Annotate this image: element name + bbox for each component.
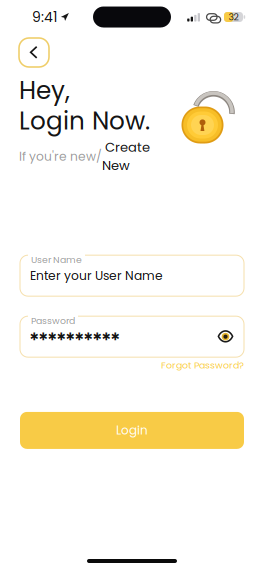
button[interactable]: Forgot Password? [161, 359, 244, 372]
button[interactable]: Show password [217, 330, 234, 344]
staticText: 9:41 [32, 7, 57, 27]
staticText: Forgot Password? [161, 359, 244, 372]
staticText: User Name [31, 253, 82, 266]
staticText: Enter your User Name [30, 267, 163, 284]
button[interactable]: Create New [102, 138, 150, 175]
staticText: Password [31, 314, 75, 327]
staticText: Login Now. [19, 103, 150, 138]
button[interactable]: Login [20, 412, 244, 449]
staticText: ✱✱✱✱✱✱✱✱✱✱ [30, 330, 120, 343]
staticText: Hey, [19, 73, 70, 107]
staticText: 32 [228, 10, 238, 24]
staticText: Create New [102, 138, 150, 175]
button[interactable]: Back [19, 38, 49, 67]
staticText: Login [116, 422, 148, 439]
staticText: If you're new/ [19, 148, 102, 165]
